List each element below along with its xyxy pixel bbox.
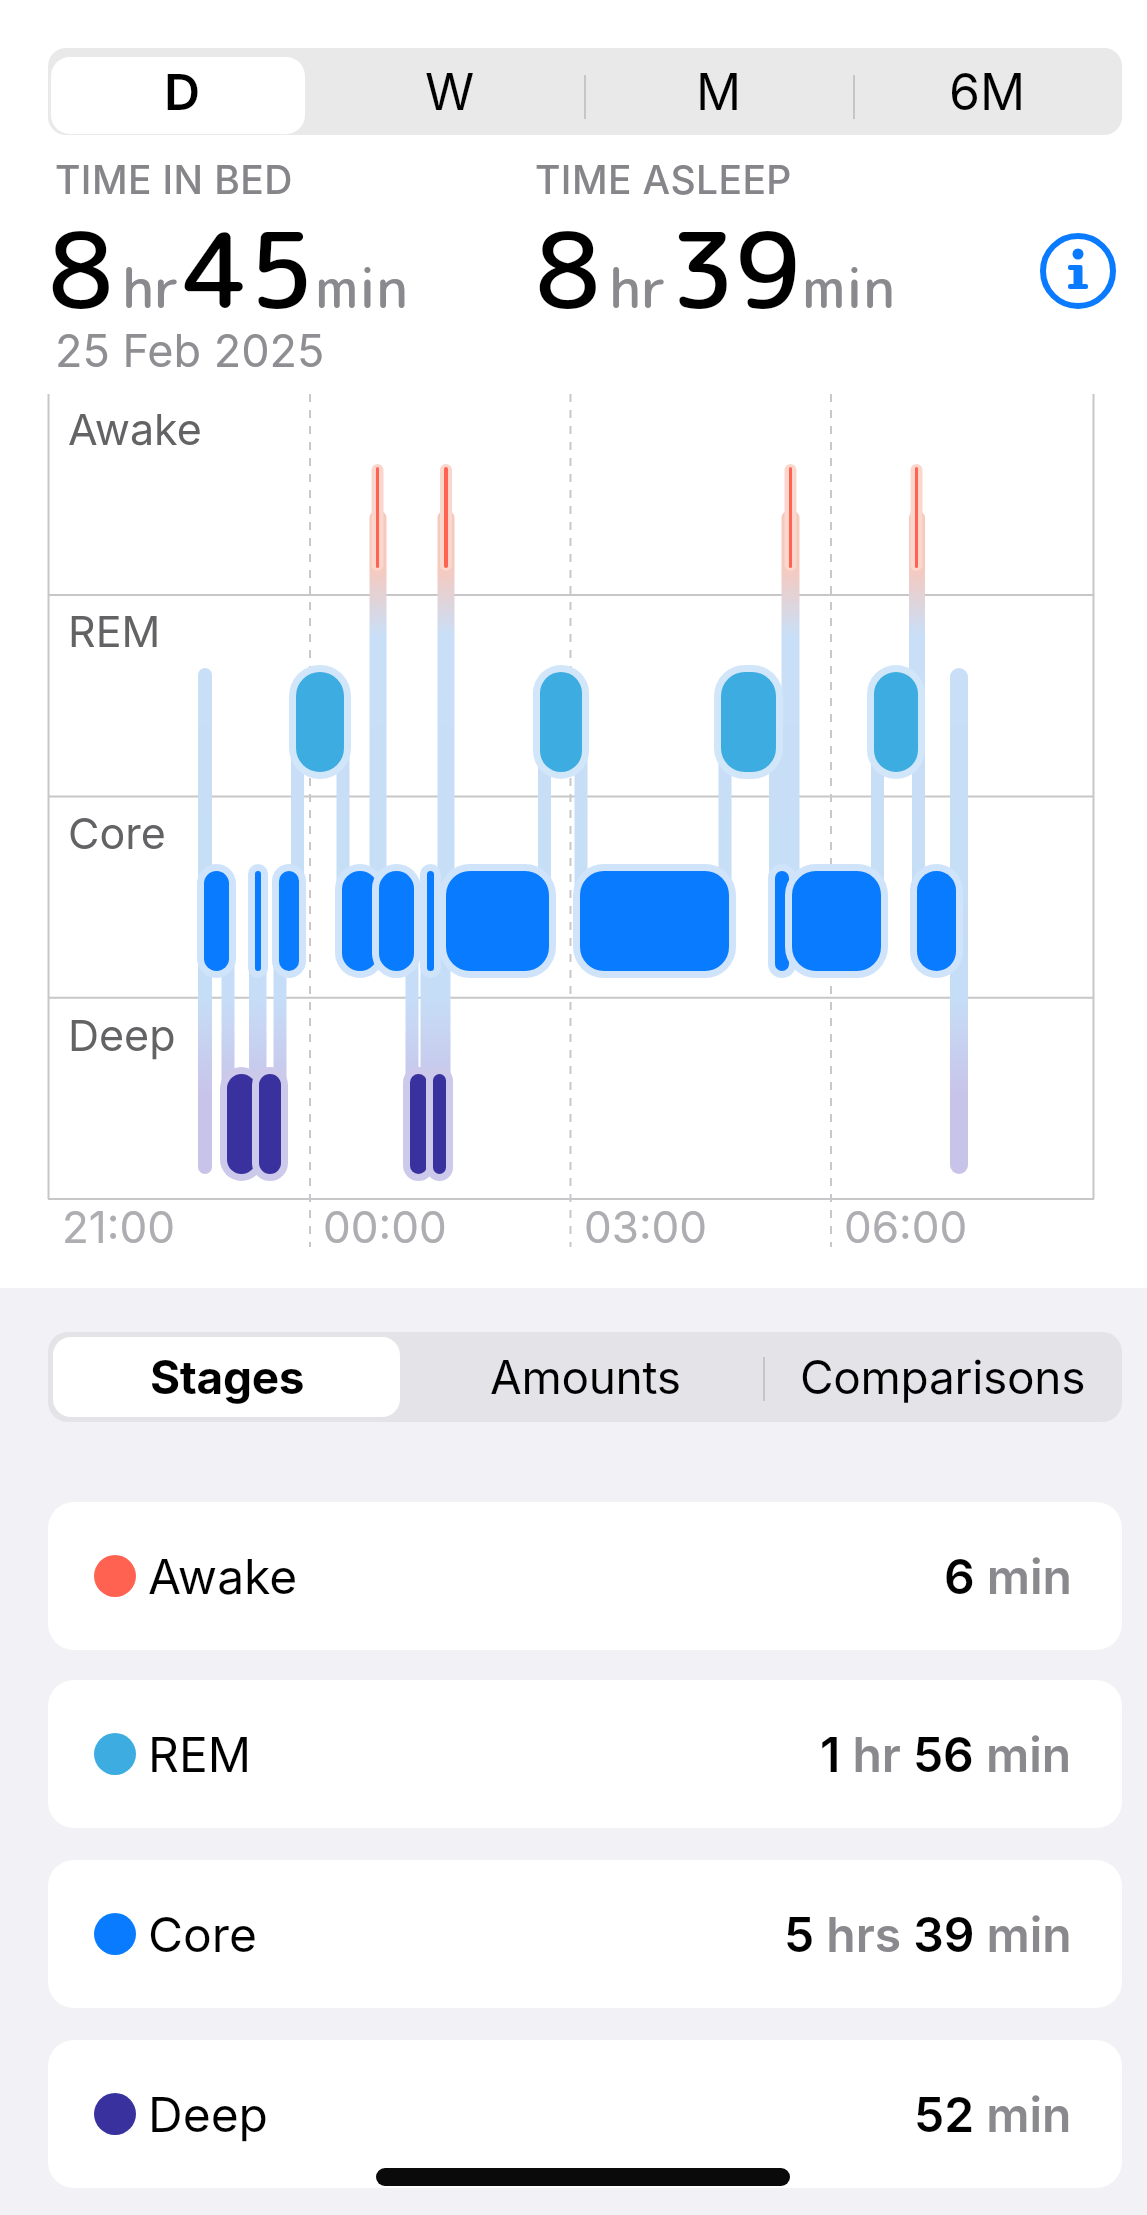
staticText: 25 Feb 2025 (55, 323, 325, 377)
staticText: Core (148, 1905, 258, 1963)
staticText: 39 (670, 196, 802, 341)
staticText: 6M (949, 62, 1026, 122)
staticText: 03:00 (584, 1200, 708, 1253)
staticText: min (315, 249, 409, 326)
button[interactable]: Comparisons (764, 1332, 1122, 1422)
staticText: Core (68, 807, 166, 859)
staticText: 45 (183, 196, 315, 341)
button[interactable]: Amounts (406, 1332, 764, 1422)
staticText: 8 (48, 196, 114, 341)
button[interactable]: Deep (48, 2040, 1122, 2188)
button[interactable]: W (316, 48, 584, 135)
staticText: W (425, 62, 475, 122)
staticText: Stages (150, 1349, 305, 1405)
button[interactable]: Core (48, 1860, 1122, 2008)
staticText: REM (148, 1725, 252, 1783)
staticText: Deep (148, 2085, 268, 2143)
staticText: TIME IN BED (55, 156, 293, 203)
staticText: 21:00 (62, 1200, 175, 1253)
button[interactable]: M (584, 48, 853, 135)
staticText: hr (122, 249, 180, 326)
staticText: 1 hr 56 min (820, 1725, 1072, 1783)
staticText: Awake (148, 1547, 298, 1605)
staticText: Amounts (490, 1349, 681, 1405)
staticText: 52 min (914, 2085, 1072, 2143)
staticText: 06:00 (844, 1200, 968, 1253)
staticText: Deep (68, 1009, 176, 1061)
staticText: min (802, 249, 896, 326)
staticText: TIME ASLEEP (535, 156, 792, 203)
staticText: hr (609, 249, 667, 326)
staticText: REM (68, 605, 161, 657)
button[interactable]: D (48, 48, 316, 135)
staticText: Awake (68, 403, 202, 455)
staticText: 6 min (944, 1547, 1072, 1605)
staticText: 5 hrs 39 min (784, 1905, 1072, 1963)
button[interactable]: Stages (48, 1332, 406, 1422)
staticText: Comparisons (800, 1349, 1086, 1405)
staticText: 00:00 (323, 1200, 447, 1253)
staticText: 8 (535, 196, 601, 341)
button[interactable] (1035, 228, 1121, 314)
staticText: M (696, 62, 742, 122)
button[interactable]: REM (48, 1680, 1122, 1828)
staticText: D (164, 62, 201, 122)
button[interactable]: Awake (48, 1502, 1122, 1650)
button[interactable]: 6M (853, 48, 1122, 135)
